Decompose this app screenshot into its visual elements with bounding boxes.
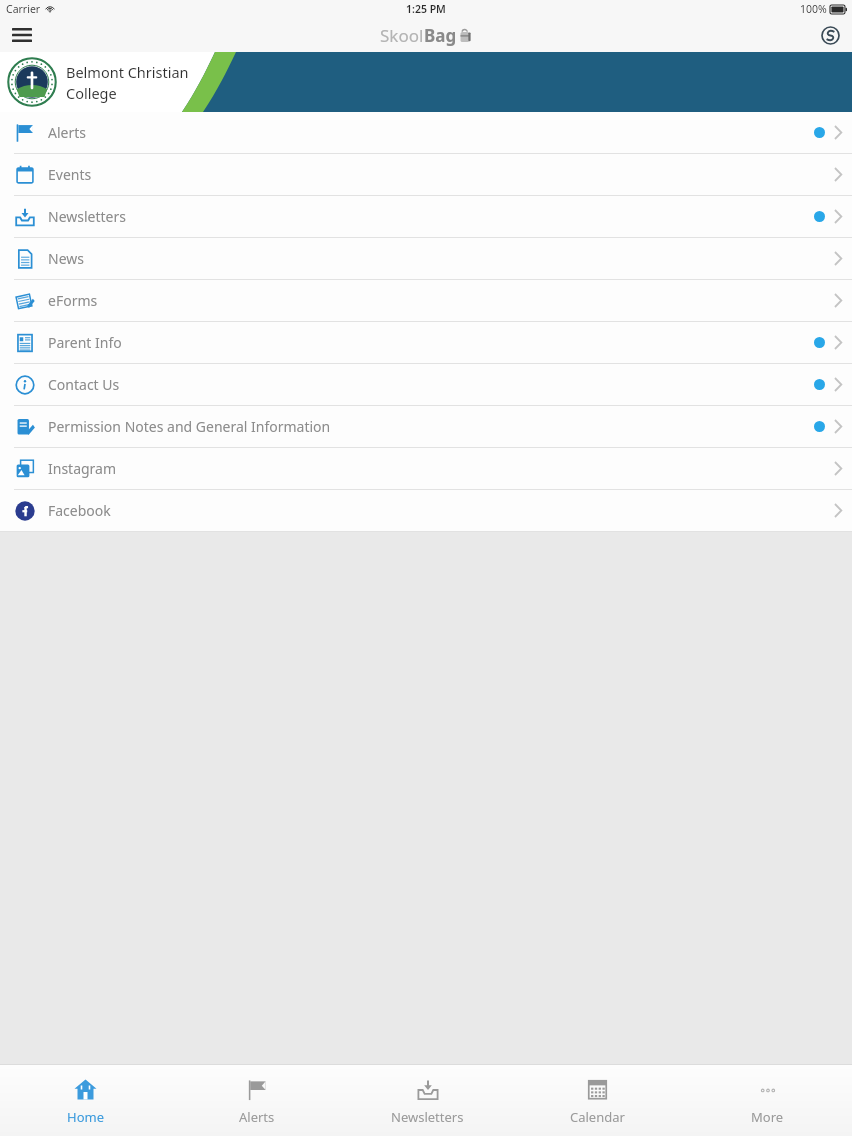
button[interactable]: Facebook [0, 490, 852, 531]
staticText: Belmont Christian [66, 62, 189, 82]
staticText: Alerts [48, 123, 86, 142]
staticText: Skool [380, 24, 424, 47]
button[interactable]: Alerts [171, 1065, 342, 1136]
staticText: News [48, 249, 84, 268]
staticText: Permission Notes and General Information [48, 417, 331, 436]
staticText: eForms [48, 291, 98, 310]
staticText: Facebook [48, 501, 111, 520]
staticText: Contact Us [48, 375, 120, 394]
staticText: Home [67, 1108, 104, 1126]
staticText: Calendar [570, 1108, 625, 1126]
button[interactable]: Refresh [808, 18, 852, 52]
button[interactable]: Menu [0, 18, 44, 52]
staticText: Newsletters [48, 207, 126, 226]
button[interactable]: Contact Us [0, 364, 852, 405]
staticText: Newsletters [391, 1108, 464, 1126]
button[interactable]: Home [0, 1065, 171, 1136]
button[interactable]: News [0, 238, 852, 279]
button[interactable]: eForms [0, 280, 852, 321]
button[interactable]: More [682, 1065, 852, 1136]
button[interactable]: Instagram [0, 448, 852, 489]
staticText: 1:25 PM [406, 2, 446, 16]
button[interactable]: Parent Info [0, 322, 852, 363]
button[interactable]: Events [0, 154, 852, 195]
staticText: Carrier [6, 2, 41, 16]
staticText: Parent Info [48, 333, 122, 352]
staticText: Alerts [239, 1108, 275, 1126]
staticText: Bag [424, 24, 457, 47]
button[interactable]: Alerts [0, 112, 852, 153]
button[interactable]: Newsletters [0, 196, 852, 237]
staticText: More [751, 1108, 784, 1126]
staticText: Events [48, 165, 92, 184]
staticText: Instagram [48, 459, 117, 478]
button[interactable]: Newsletters [342, 1065, 512, 1136]
staticText: College [66, 83, 117, 103]
staticText: 100% [800, 2, 827, 16]
button[interactable]: Calendar [512, 1065, 682, 1136]
button[interactable]: Permission Notes and General Information [0, 406, 852, 447]
